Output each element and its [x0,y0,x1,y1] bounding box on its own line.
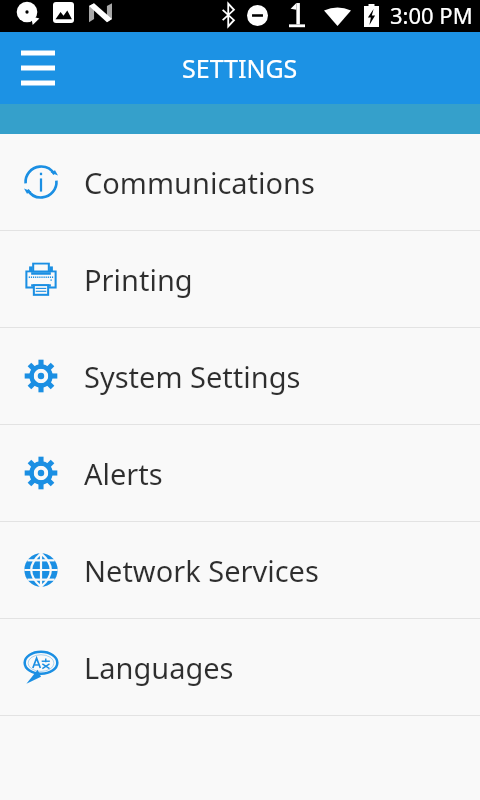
staticText: Alerts [84,454,163,493]
staticText: SETTINGS [182,51,298,85]
button[interactable]: Languages [0,619,480,716]
button[interactable]: Communications [0,134,480,231]
staticText: Printing [84,260,193,299]
button[interactable]: Open navigation menu [7,37,69,99]
staticText: Languages [84,648,234,687]
staticText: Network Services [84,551,319,590]
button[interactable]: Alerts [0,425,480,522]
staticText: Communications [84,163,315,202]
staticText: System Settings [84,357,301,396]
button[interactable]: Network Services [0,522,480,619]
button[interactable]: Printing [0,231,480,328]
button[interactable]: System Settings [0,328,480,425]
staticText: 3:00 PM [390,0,473,30]
